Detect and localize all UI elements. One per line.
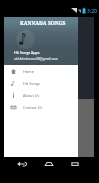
button[interactable]: Recent apps [69,158,81,170]
button[interactable]: Home [4,65,78,77]
staticText: Hit Songs Apps [14,50,40,55]
staticText: About Us [23,93,40,98]
staticText: Hit Songs [23,81,41,86]
staticText: KANNADA SONGS [20,20,66,27]
button[interactable]: Hit Songs [4,77,78,89]
button[interactable]: About Us [4,89,78,101]
staticText: 3:20 [87,8,97,15]
button[interactable]: Home [43,158,55,170]
staticText: Home [23,69,34,74]
button[interactable]: Back [16,158,28,170]
staticText: abhisheksomu00@gmail.com [14,57,59,61]
staticText: Contact Us [23,105,43,110]
button[interactable]: Contact Us [4,101,78,113]
